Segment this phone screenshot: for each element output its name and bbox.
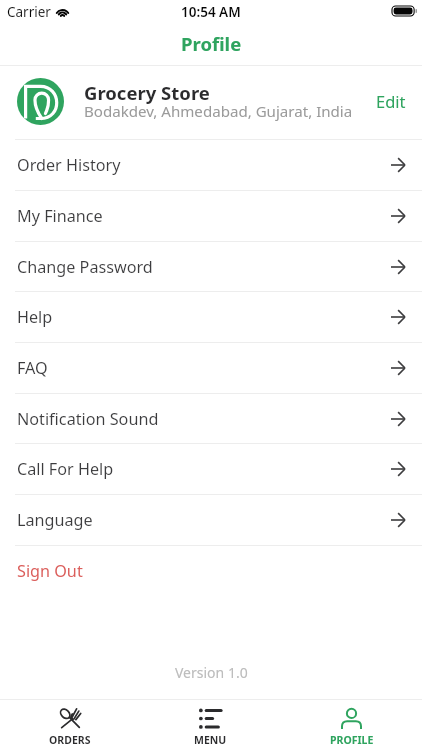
- button[interactable]: Order History: [0, 140, 422, 191]
- staticText: PROFILE: [330, 733, 374, 747]
- staticText: ORDERS: [49, 733, 91, 747]
- staticText: Version 1.0: [175, 663, 248, 682]
- button[interactable]: Sign Out: [0, 546, 422, 596]
- button[interactable]: Help: [0, 292, 422, 343]
- staticText: Call For Help: [17, 458, 114, 480]
- staticText: Grocery Store: [84, 80, 210, 105]
- staticText: 10:54 AM: [181, 3, 241, 21]
- button[interactable]: Change Password: [0, 242, 422, 292]
- button[interactable]: Language: [0, 495, 422, 546]
- staticText: Profile: [181, 31, 242, 56]
- button[interactable]: FAQ: [0, 343, 422, 394]
- button[interactable]: My Finance: [0, 191, 422, 242]
- button[interactable]: Notification Sound: [0, 394, 422, 444]
- button[interactable]: ORDERS: [0, 700, 140, 750]
- button[interactable]: Grocery Store: [0, 66, 422, 139]
- button[interactable]: Edit: [368, 82, 414, 120]
- staticText: Carrier: [7, 3, 51, 21]
- staticText: MENU: [194, 733, 227, 747]
- staticText: Sign Out: [17, 560, 83, 582]
- staticText: My Finance: [17, 205, 103, 227]
- staticText: Order History: [17, 154, 121, 176]
- button[interactable]: MENU: [140, 700, 281, 750]
- button[interactable]: PROFILE: [281, 700, 422, 750]
- staticText: Language: [17, 509, 93, 531]
- staticText: Notification Sound: [17, 408, 159, 430]
- staticText: FAQ: [17, 357, 48, 379]
- staticText: Change Password: [17, 256, 153, 278]
- staticText: Help: [17, 306, 53, 328]
- staticText: Bodakdev, Ahmedabad, Gujarat, India: [84, 101, 353, 122]
- button[interactable]: Call For Help: [0, 444, 422, 495]
- staticText: Edit: [376, 90, 406, 112]
